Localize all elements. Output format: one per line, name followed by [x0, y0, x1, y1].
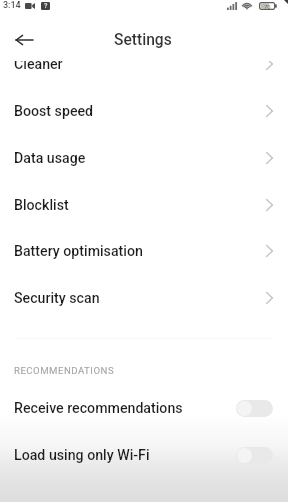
staticText: Boost speed — [14, 103, 94, 120]
staticText: Receive recommendations — [14, 400, 183, 417]
staticText: 70 — [264, 3, 271, 10]
staticText: Settings — [114, 31, 172, 49]
button[interactable]: Receive recommendations — [0, 385, 288, 432]
button[interactable]: Data usage — [0, 135, 288, 182]
staticText: 3:14 — [3, 0, 21, 11]
button[interactable]: Battery optimisation — [0, 228, 288, 275]
staticText: RECOMMENDATIONS — [14, 365, 115, 376]
button[interactable]: Boost speed — [0, 88, 288, 135]
staticText: Load using only Wi-Fi — [14, 447, 150, 464]
button[interactable]: Security scan — [0, 275, 288, 322]
button[interactable]: Blocklist — [0, 182, 288, 229]
staticText: Security scan — [14, 290, 100, 307]
staticText: Cleaner — [14, 56, 63, 73]
button[interactable]: Load using only Wi-Fi — [0, 432, 288, 479]
staticText: Data usage — [14, 150, 86, 167]
button[interactable]: Load using only Wi-Fi — [236, 447, 273, 464]
staticText: Battery optimisation — [14, 243, 143, 260]
button[interactable]: Receive recommendations — [236, 400, 273, 417]
button[interactable]: Back — [10, 26, 38, 54]
button[interactable]: Cleaner — [0, 41, 288, 88]
staticText: ? — [44, 2, 48, 10]
staticText: Blocklist — [14, 197, 69, 214]
